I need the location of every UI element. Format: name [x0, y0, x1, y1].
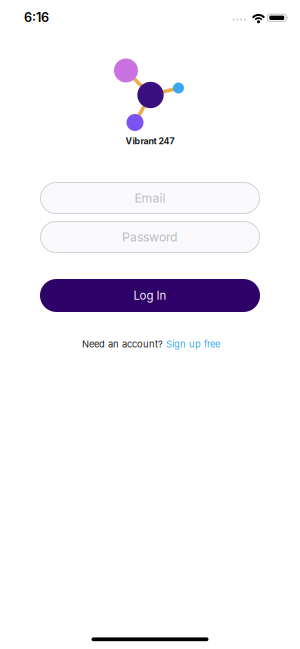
button[interactable]: Sign up free — [166, 338, 220, 350]
staticText: 6:16 — [24, 10, 49, 25]
staticText: Need an account? — [82, 338, 163, 350]
button[interactable]: Log In — [40, 279, 260, 312]
staticText: Sign up free — [166, 338, 220, 350]
button[interactable]: Password — [40, 221, 260, 253]
staticText: Log In — [133, 289, 166, 302]
staticText: Password — [122, 230, 178, 244]
staticText: Email — [134, 191, 165, 205]
staticText: Vibrant 247 — [125, 136, 174, 146]
button[interactable]: Email — [40, 182, 260, 214]
